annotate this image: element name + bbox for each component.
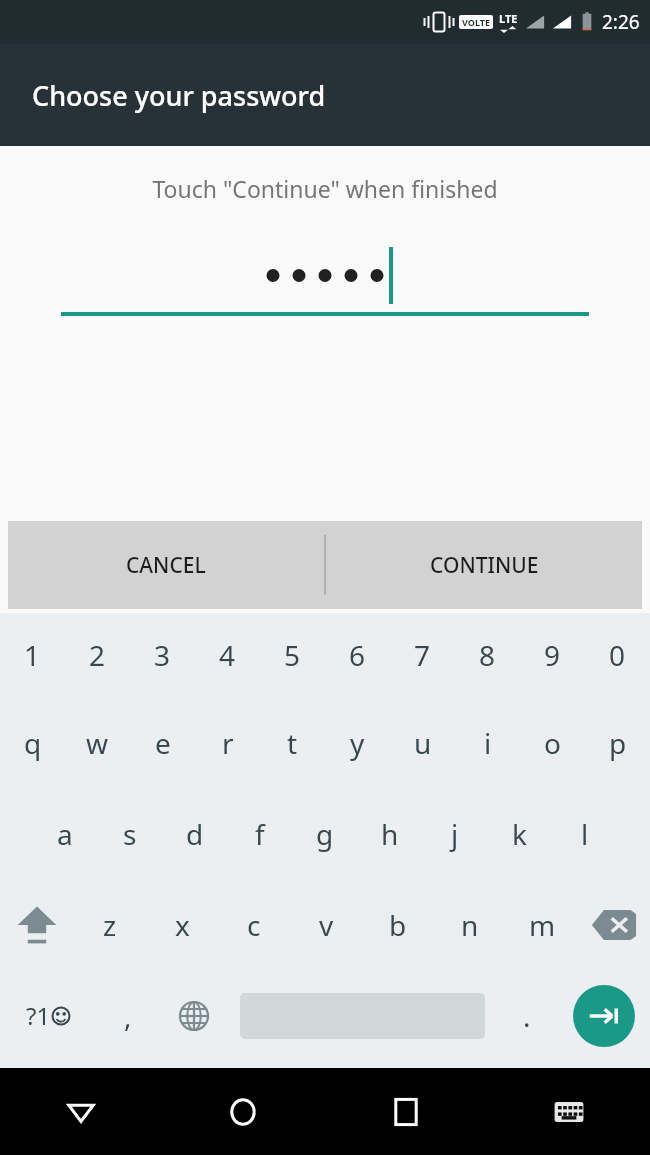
button[interactable]: 4 [195,613,260,697]
button[interactable]: t [260,697,325,788]
staticText: 4 [219,636,236,674]
staticText: a [57,815,73,853]
button[interactable]: Home [162,1068,324,1155]
button[interactable]: Change language [159,970,229,1061]
button[interactable]: 3 [130,613,195,697]
staticText: CANCEL [126,551,206,580]
staticText: m [529,906,556,944]
button[interactable]: h [357,788,422,879]
button[interactable]: 6 [325,613,390,697]
button[interactable] [61,241,589,316]
button[interactable]: q [0,697,65,788]
staticText: n [461,906,479,944]
staticText: w [86,724,109,762]
button[interactable]: 0 [585,613,650,697]
button[interactable]: 2 [65,613,130,697]
staticText: i [484,724,492,762]
button[interactable]: p [585,697,650,788]
staticText: h [381,815,399,853]
staticText: v [319,906,334,944]
staticText: 2 [89,636,106,674]
staticText: s [123,815,137,853]
staticText: o [544,724,561,762]
button[interactable]: 8 [455,613,520,697]
button[interactable]: f [227,788,292,879]
staticText: LTE [499,11,518,26]
button[interactable]: Recent apps [324,1068,487,1155]
button[interactable]: , [96,970,159,1061]
staticText: 3 [154,636,171,674]
staticText: Choose your password [32,77,326,114]
button[interactable]: z [73,879,146,970]
button[interactable]: CANCEL [8,521,324,609]
button[interactable]: Symbols and emoji [0,970,96,1061]
staticText: j [451,815,459,853]
staticText: c [247,906,261,944]
button[interactable]: Switch keyboard [487,1068,650,1155]
button[interactable]: b [362,879,434,970]
staticText: 0 [609,636,626,674]
staticText: 1 [24,636,41,674]
staticText: d [186,815,204,853]
staticText: 5 [284,636,301,674]
staticText: f [255,815,265,853]
staticText: . [523,997,531,1035]
button[interactable]: m [506,879,578,970]
button[interactable]: 5 [260,613,325,697]
staticText: ?1 [26,999,51,1032]
button[interactable]: n [434,879,506,970]
staticText: Touch "Continue" when finished [152,173,498,204]
staticText: 7 [414,636,431,674]
button[interactable]: w [65,697,130,788]
staticText: x [175,906,190,944]
button[interactable]: Next [558,970,650,1061]
button[interactable]: j [422,788,487,879]
staticText: p [609,724,627,762]
staticText: e [155,724,171,762]
button[interactable]: k [487,788,552,879]
staticText: q [24,724,42,762]
button[interactable]: c [218,879,290,970]
staticText: u [414,724,432,762]
staticText: l [581,815,589,853]
button[interactable]: CONTINUE [326,521,642,609]
button[interactable]: u [390,697,455,788]
staticText: VOLTE [462,16,490,28]
staticText: 8 [479,636,496,674]
button[interactable]: o [520,697,585,788]
button[interactable]: 9 [520,613,585,697]
button[interactable]: Back [0,1068,162,1155]
staticText: r [222,724,234,762]
button[interactable]: s [97,788,162,879]
button[interactable]: d [162,788,227,879]
button[interactable]: Shift [0,879,73,970]
staticText: b [389,906,407,944]
staticText: 2:26 [602,9,640,35]
button[interactable]: 1 [0,613,65,697]
button[interactable]: 7 [390,613,455,697]
staticText: g [316,815,334,853]
staticText: t [287,724,298,762]
staticText: CONTINUE [430,551,539,580]
staticText: y [350,724,365,762]
staticText: 9 [544,636,561,674]
button[interactable]: a [32,788,97,879]
button[interactable]: Backspace [578,879,650,970]
button[interactable]: e [130,697,195,788]
staticText: 6 [349,636,366,674]
button[interactable]: r [195,697,260,788]
button[interactable]: y [325,697,390,788]
button[interactable]: Space [229,970,495,1061]
button[interactable]: g [292,788,357,879]
button[interactable]: x [146,879,218,970]
staticText: k [512,815,527,853]
staticText: z [103,906,117,944]
staticText: , [124,997,132,1035]
button[interactable]: . [495,970,558,1061]
button[interactable]: v [290,879,362,970]
button[interactable]: l [552,788,617,879]
button[interactable]: i [455,697,520,788]
